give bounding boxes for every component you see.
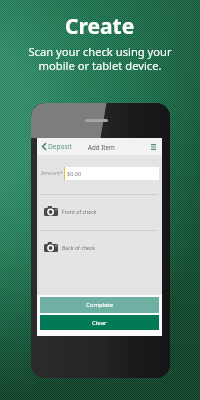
staticText: Back of check [62, 244, 96, 251]
staticText: Front of check [62, 208, 97, 215]
button[interactable]: Front of check [37, 198, 162, 224]
staticText: Complete [86, 301, 114, 309]
staticText: Add Item [88, 143, 115, 151]
staticText: Scan your check using your mobile or tab… [28, 44, 172, 74]
staticText: Create [65, 12, 135, 41]
staticText: Clear [92, 319, 107, 327]
button[interactable] [64, 167, 159, 180]
button[interactable]: Back of check [37, 234, 162, 260]
button[interactable]: Deposit [42, 138, 72, 155]
button[interactable]: Menu [149, 141, 162, 152]
staticText: Amount* [41, 170, 63, 177]
button[interactable]: Complete [40, 297, 159, 313]
button[interactable]: Clear [40, 315, 159, 330]
staticText: $0.00 [67, 170, 82, 177]
staticText: Deposit [48, 142, 72, 151]
